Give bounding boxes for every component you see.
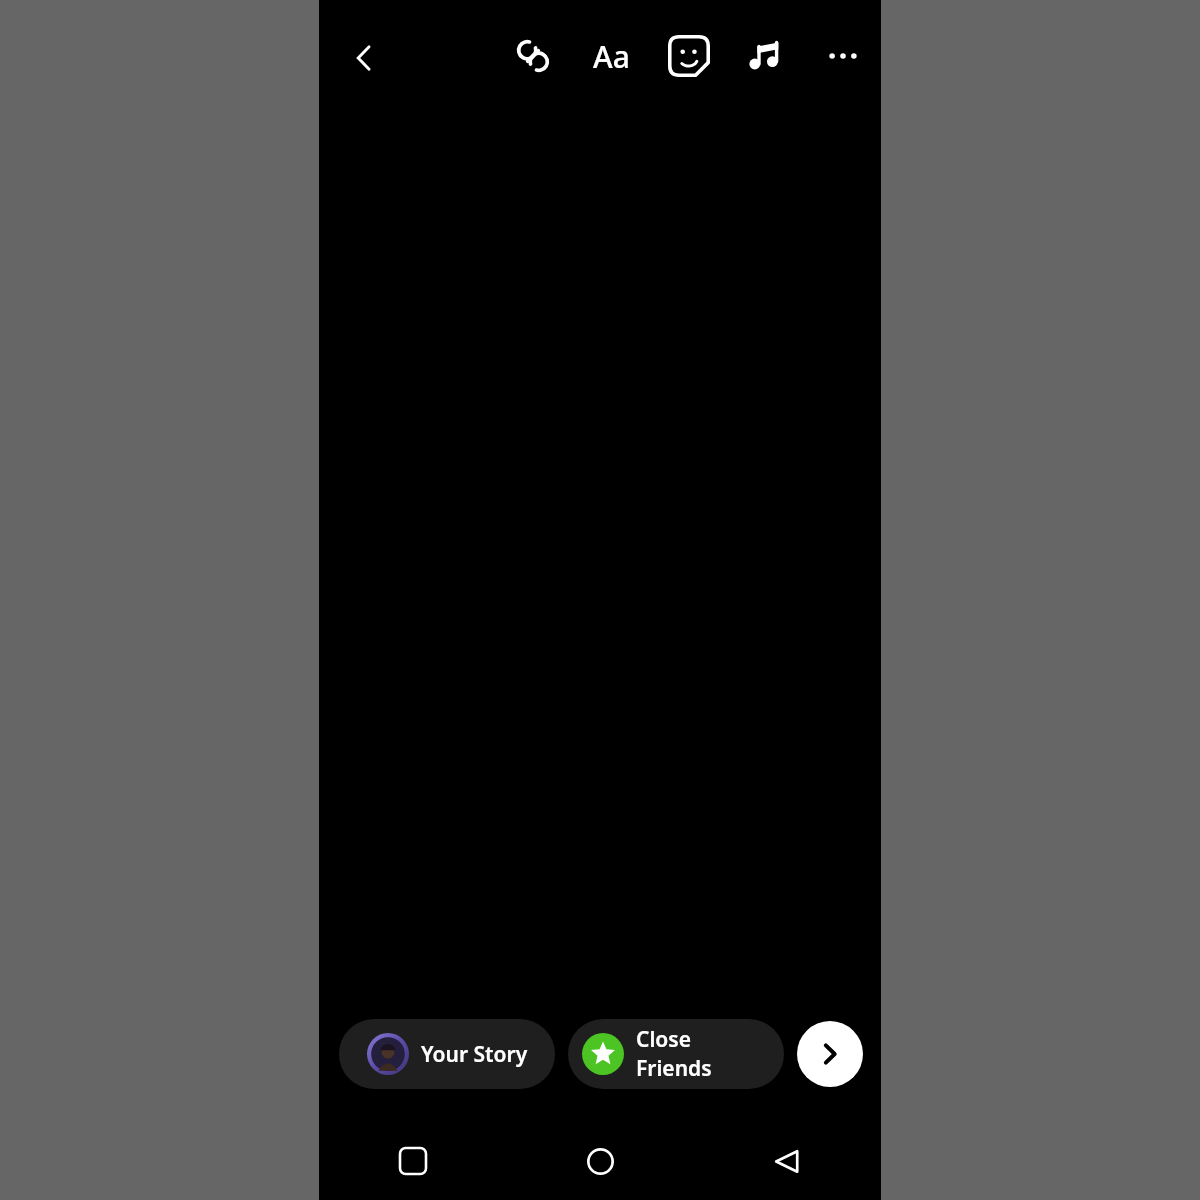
- button[interactable]: Back: [337, 30, 393, 86]
- button[interactable]: Your Story: [339, 1019, 555, 1089]
- button[interactable]: Close Friends: [568, 1019, 784, 1089]
- button[interactable]: More options: [811, 24, 875, 88]
- button[interactable]: Text: [579, 24, 643, 88]
- button[interactable]: Music: [735, 24, 799, 88]
- button[interactable]: Next: [797, 1021, 863, 1087]
- staticText: Your Story: [421, 1040, 528, 1069]
- staticText: Aa: [593, 36, 630, 77]
- button[interactable]: Add link: [501, 24, 565, 88]
- staticText: Close Friends: [636, 1025, 770, 1083]
- button[interactable]: Stickers: [657, 24, 721, 88]
- button[interactable]: Recent apps: [319, 1122, 507, 1200]
- button[interactable]: Home: [507, 1122, 694, 1200]
- button[interactable]: Back: [694, 1122, 881, 1200]
